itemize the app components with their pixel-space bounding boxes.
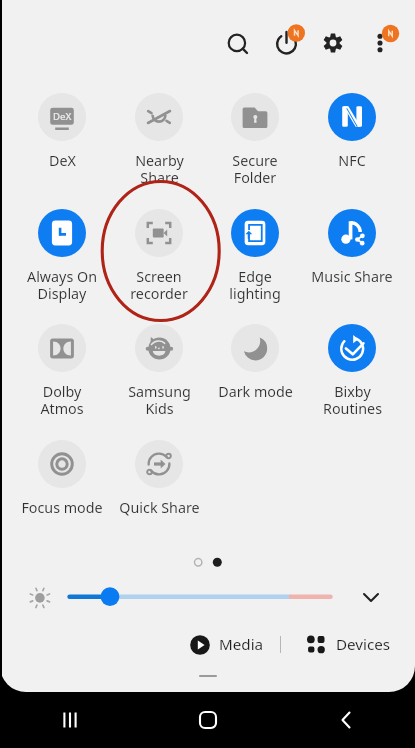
button[interactable]: Music Share <box>304 207 400 315</box>
button[interactable]: Focus mode <box>14 438 110 546</box>
staticText: Media <box>219 634 264 655</box>
button[interactable]: DeX <box>14 91 110 199</box>
button[interactable]: Settings <box>312 22 354 64</box>
button[interactable]: More options <box>359 17 407 65</box>
button[interactable]: Secure Folder <box>207 91 303 199</box>
staticText: DeX <box>53 110 72 123</box>
button[interactable]: Back <box>277 692 415 748</box>
staticText: Edge lighting <box>229 267 281 303</box>
button[interactable]: Samsung Kids <box>111 322 207 430</box>
button[interactable]: Power <box>265 17 313 65</box>
button[interactable]: Dark mode <box>207 322 303 430</box>
staticText: Secure Folder <box>232 151 278 187</box>
staticText: Samsung Kids <box>128 382 191 418</box>
staticText: Quick Share <box>119 498 200 517</box>
staticText: Nearby Share <box>135 151 184 187</box>
button[interactable]: Home <box>139 692 277 748</box>
staticText: Focus mode <box>21 498 103 517</box>
staticText: Screen recorder <box>130 267 188 303</box>
button[interactable]: Screen recorder <box>111 207 207 315</box>
staticText: Bixby Routines <box>323 382 382 418</box>
button[interactable]: Quick Share <box>111 438 207 546</box>
button[interactable]: Edge lighting <box>207 207 303 315</box>
button[interactable]: Devices <box>307 630 391 659</box>
button[interactable]: Media <box>190 630 264 659</box>
button[interactable]: Recents <box>0 692 139 748</box>
staticText: Music Share <box>311 267 393 286</box>
button[interactable]: Nearby Share <box>111 91 207 199</box>
staticText: Devices <box>336 634 391 655</box>
staticText: DeX <box>49 151 76 170</box>
button[interactable]: Expand brightness <box>356 582 386 612</box>
staticText: Always On Display <box>27 267 97 303</box>
button[interactable]: NFC <box>304 91 400 199</box>
button[interactable]: Search <box>217 23 259 65</box>
button[interactable]: Dolby Atmos <box>14 322 110 430</box>
button[interactable]: Bixby Routines <box>304 322 400 430</box>
staticText: Dolby Atmos <box>40 382 84 418</box>
staticText: NFC <box>338 151 366 170</box>
button[interactable]: Always On Display <box>14 207 110 315</box>
staticText: Dark mode <box>218 382 293 401</box>
